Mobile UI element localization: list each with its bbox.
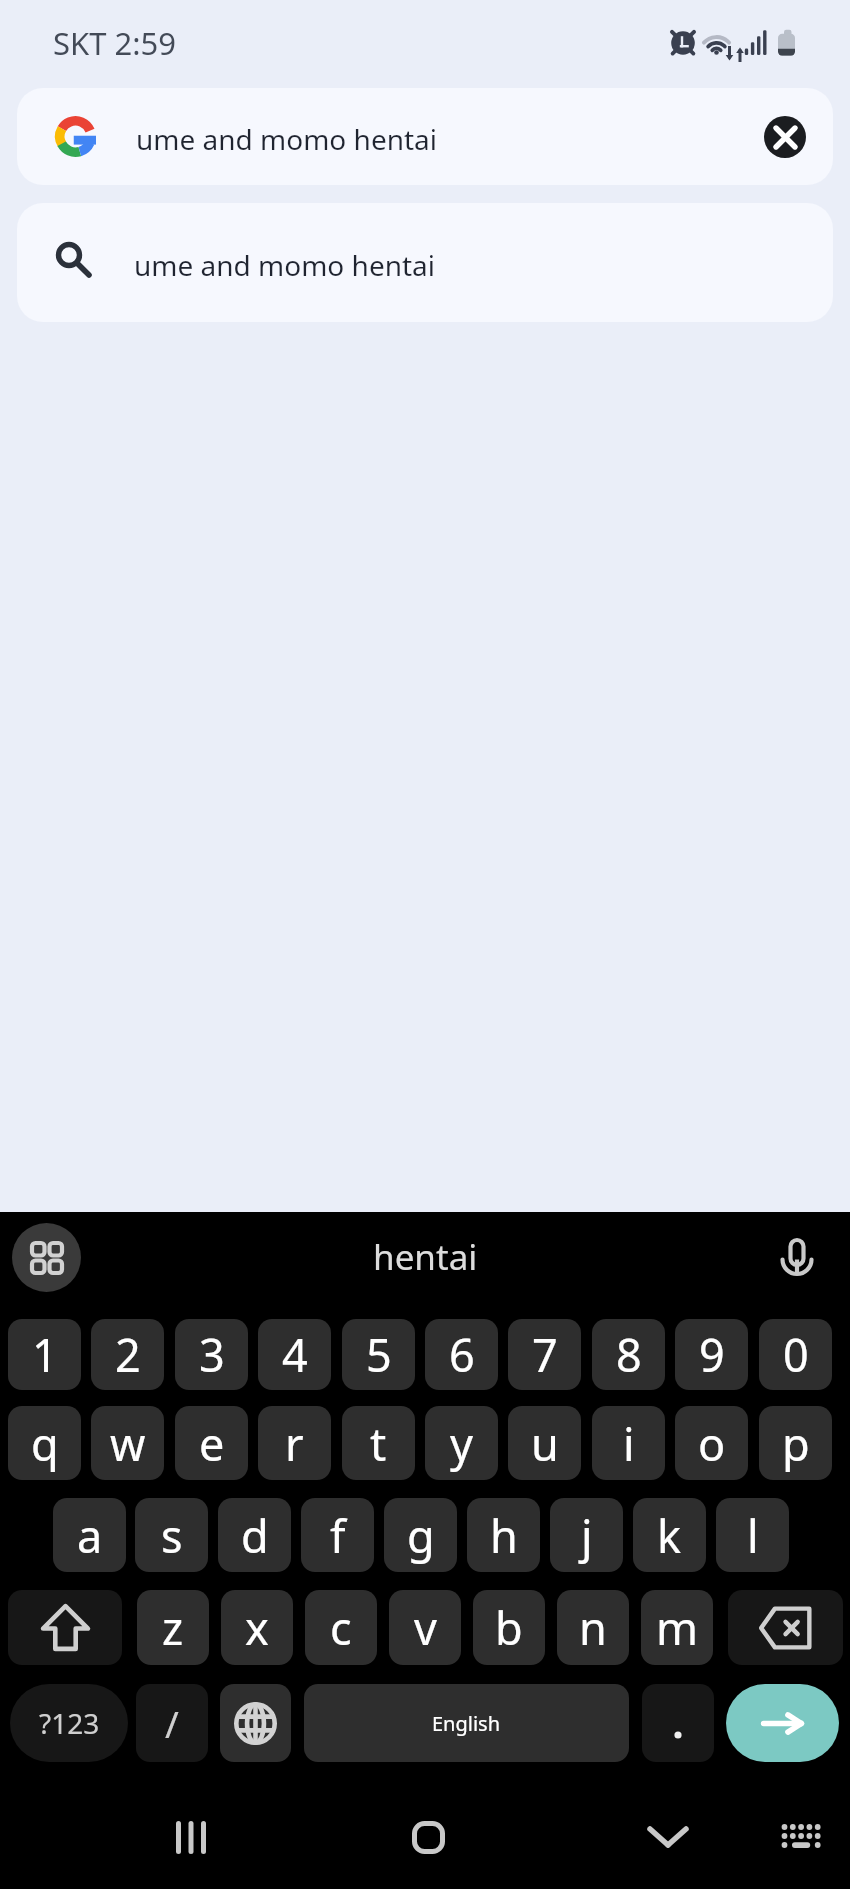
button[interactable]	[728, 1590, 843, 1665]
staticText: u	[531, 1413, 559, 1474]
staticText: n	[579, 1597, 607, 1658]
staticText: z	[162, 1597, 184, 1658]
button[interactable]: 0	[759, 1319, 832, 1390]
button[interactable]: k	[633, 1498, 706, 1572]
staticText: s	[161, 1505, 183, 1566]
staticText: ?123	[39, 1704, 100, 1742]
button[interactable]: 3	[175, 1319, 248, 1390]
staticText: m	[656, 1597, 699, 1658]
button[interactable]: r	[258, 1406, 331, 1480]
button[interactable]: l	[716, 1498, 789, 1572]
staticText: 2	[115, 1324, 141, 1385]
button[interactable]: q	[8, 1406, 81, 1480]
button[interactable]: 2	[91, 1319, 164, 1390]
button[interactable]: Hide keyboard	[643, 1812, 693, 1862]
button[interactable]: 8	[592, 1319, 665, 1390]
button[interactable]: Recents	[166, 1812, 216, 1862]
staticText: hentai	[373, 1233, 478, 1281]
button[interactable]: Switch keyboard	[777, 1812, 827, 1862]
button[interactable]: 4	[258, 1319, 331, 1390]
staticText: t	[370, 1413, 387, 1474]
staticText: x	[245, 1597, 269, 1658]
button[interactable]: p	[759, 1406, 832, 1480]
button[interactable]: n	[557, 1590, 629, 1665]
button[interactable]: f	[301, 1498, 374, 1572]
button[interactable]	[726, 1684, 839, 1762]
button[interactable]: i	[592, 1406, 665, 1480]
button[interactable]: g	[384, 1498, 457, 1572]
button[interactable]: m	[641, 1590, 713, 1665]
staticText: /	[165, 1698, 179, 1748]
button[interactable]: 6	[425, 1319, 498, 1390]
button[interactable]: x	[221, 1590, 293, 1665]
button[interactable]: w	[91, 1406, 164, 1480]
staticText: ume and momo hentai	[134, 246, 436, 284]
button[interactable]: s	[135, 1498, 208, 1572]
staticText: 0	[783, 1324, 809, 1385]
staticText: f	[330, 1505, 346, 1566]
staticText: 4	[282, 1324, 308, 1385]
staticText: w	[110, 1413, 146, 1474]
button[interactable]: y	[425, 1406, 498, 1480]
staticText: l	[747, 1505, 759, 1566]
button[interactable]: English	[304, 1684, 629, 1762]
button[interactable]: Clear	[764, 116, 806, 158]
button[interactable]: 9	[675, 1319, 748, 1390]
button[interactable]: d	[218, 1498, 291, 1572]
button[interactable]: 5	[342, 1319, 415, 1390]
button[interactable]: ?123	[10, 1684, 128, 1762]
button[interactable]: u	[508, 1406, 581, 1480]
staticText: 1	[32, 1324, 58, 1385]
button[interactable]: ume and momo hentai	[17, 203, 833, 322]
staticText: 9	[699, 1324, 725, 1385]
staticText: SKT 2:59	[53, 22, 177, 64]
staticText: 8	[616, 1324, 642, 1385]
button[interactable]	[8, 1590, 122, 1665]
button[interactable]: a	[53, 1498, 126, 1572]
staticText: 5	[366, 1324, 392, 1385]
staticText: 6	[449, 1324, 475, 1385]
button[interactable]: Voice input	[772, 1232, 822, 1282]
staticText: 3	[199, 1324, 225, 1385]
button[interactable]: 7	[508, 1319, 581, 1390]
staticText: p	[782, 1413, 810, 1474]
button[interactable]: b	[473, 1590, 545, 1665]
button[interactable]: t	[342, 1406, 415, 1480]
staticText: k	[657, 1505, 682, 1566]
staticText: r	[285, 1413, 304, 1474]
staticText: g	[407, 1505, 435, 1566]
button[interactable]: o	[675, 1406, 748, 1480]
button[interactable]	[642, 1684, 714, 1762]
staticText: 7	[532, 1324, 558, 1385]
staticText: v	[414, 1597, 437, 1658]
staticText: c	[330, 1597, 352, 1658]
staticText: i	[623, 1413, 635, 1474]
button[interactable]: j	[550, 1498, 623, 1572]
staticText: j	[581, 1505, 593, 1566]
button[interactable]: h	[467, 1498, 540, 1572]
button[interactable]: c	[305, 1590, 377, 1665]
staticText: b	[495, 1597, 523, 1658]
button[interactable]	[220, 1684, 291, 1762]
staticText: o	[698, 1413, 726, 1474]
staticText: y	[450, 1413, 473, 1474]
button[interactable]: Home	[403, 1812, 453, 1862]
button[interactable]: ume and momo hentai	[17, 88, 833, 185]
button[interactable]: /	[136, 1684, 208, 1762]
staticText: e	[199, 1413, 225, 1474]
button[interactable]: z	[137, 1590, 209, 1665]
staticText: a	[77, 1505, 103, 1566]
staticText: English	[432, 1710, 501, 1737]
button[interactable]: e	[175, 1406, 248, 1480]
staticText: ume and momo hentai	[136, 120, 438, 158]
staticText: h	[490, 1505, 518, 1566]
staticText: q	[31, 1413, 59, 1474]
staticText: d	[241, 1505, 269, 1566]
button[interactable]: 1	[8, 1319, 81, 1390]
button[interactable]: v	[389, 1590, 461, 1665]
button[interactable]: Keyboard modes	[12, 1223, 81, 1292]
